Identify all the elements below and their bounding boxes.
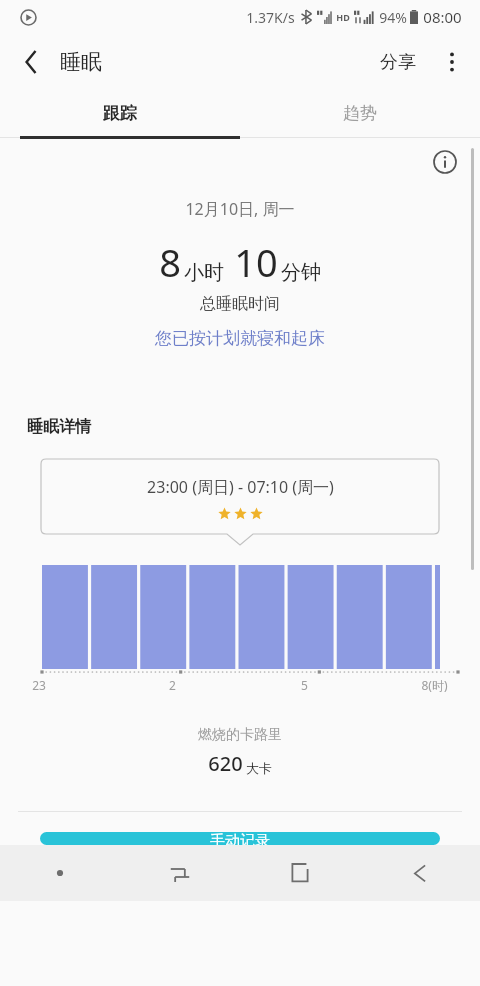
staticText: 睡眠 (60, 49, 102, 75)
staticText: HD (336, 11, 350, 23)
button[interactable]: Information (426, 143, 464, 181)
button[interactable]: 23:00 (周日) - 07:10 (周一) (41, 459, 439, 534)
staticText: 总睡眠时间 (200, 294, 280, 314)
staticText: 1.37K/s (246, 8, 295, 27)
staticText: 跟踪 (103, 103, 137, 124)
button[interactable]: 分享 (374, 41, 422, 84)
button[interactable]: Back (10, 40, 54, 84)
staticText: 手动记录 (210, 832, 270, 845)
staticText: 小时 (184, 260, 224, 285)
staticText: 8(时) (421, 677, 448, 693)
staticText: 燃烧的卡路里 (198, 726, 282, 744)
button[interactable]: Back (360, 845, 480, 901)
staticText: 您已按计划就寝和起床 (155, 328, 325, 349)
button[interactable]: More options (430, 40, 474, 84)
staticText: 12月10日, 周一 (185, 198, 295, 220)
button[interactable]: Home (240, 845, 360, 901)
button[interactable]: Hide keyboard (0, 845, 120, 901)
staticText: 94% (379, 8, 407, 27)
staticText: 2 (169, 677, 176, 693)
staticText: 趋势 (343, 103, 377, 124)
staticText: 08:00 (423, 7, 462, 27)
button[interactable]: Recents (120, 845, 240, 901)
staticText: 大卡 (246, 760, 272, 776)
button[interactable]: 手动记录 (40, 832, 440, 845)
staticText: 8 (159, 236, 181, 288)
staticText: 分钟 (281, 260, 321, 285)
button[interactable]: 趋势 (240, 90, 480, 136)
staticText: 23 (32, 677, 46, 693)
button[interactable]: 跟踪 (0, 90, 240, 136)
staticText: 分享 (380, 51, 416, 74)
staticText: 睡眠详情 (27, 417, 91, 437)
staticText: 5 (301, 677, 308, 693)
staticText: 620 (208, 750, 243, 777)
staticText: 23:00 (周日) - 07:10 (周一) (147, 476, 334, 498)
staticText: 10 (234, 236, 278, 288)
